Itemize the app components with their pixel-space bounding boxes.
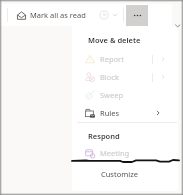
button[interactable]: Customize xyxy=(78,165,178,183)
staticText: Block xyxy=(100,72,119,82)
staticText: Meeting xyxy=(100,148,130,158)
staticText: Rules xyxy=(100,108,120,118)
other: Expand xyxy=(174,22,181,29)
button[interactable]: Snooze xyxy=(99,4,118,26)
button[interactable]: More options xyxy=(126,5,148,26)
button[interactable]: Rules xyxy=(74,104,176,122)
button[interactable]: Mark all as read xyxy=(14,4,89,26)
button[interactable]: Block xyxy=(74,68,176,86)
staticText: Report xyxy=(100,54,124,64)
staticText: Respond xyxy=(88,131,120,141)
button[interactable]: Report xyxy=(74,50,176,68)
staticText: Move & delete xyxy=(88,35,141,45)
button[interactable]: Sweep xyxy=(74,86,176,104)
staticText: Customize xyxy=(101,169,138,179)
staticText: Mark all as read xyxy=(30,10,86,20)
button[interactable]: Meeting xyxy=(74,144,176,162)
staticText: Sweep xyxy=(100,90,124,100)
